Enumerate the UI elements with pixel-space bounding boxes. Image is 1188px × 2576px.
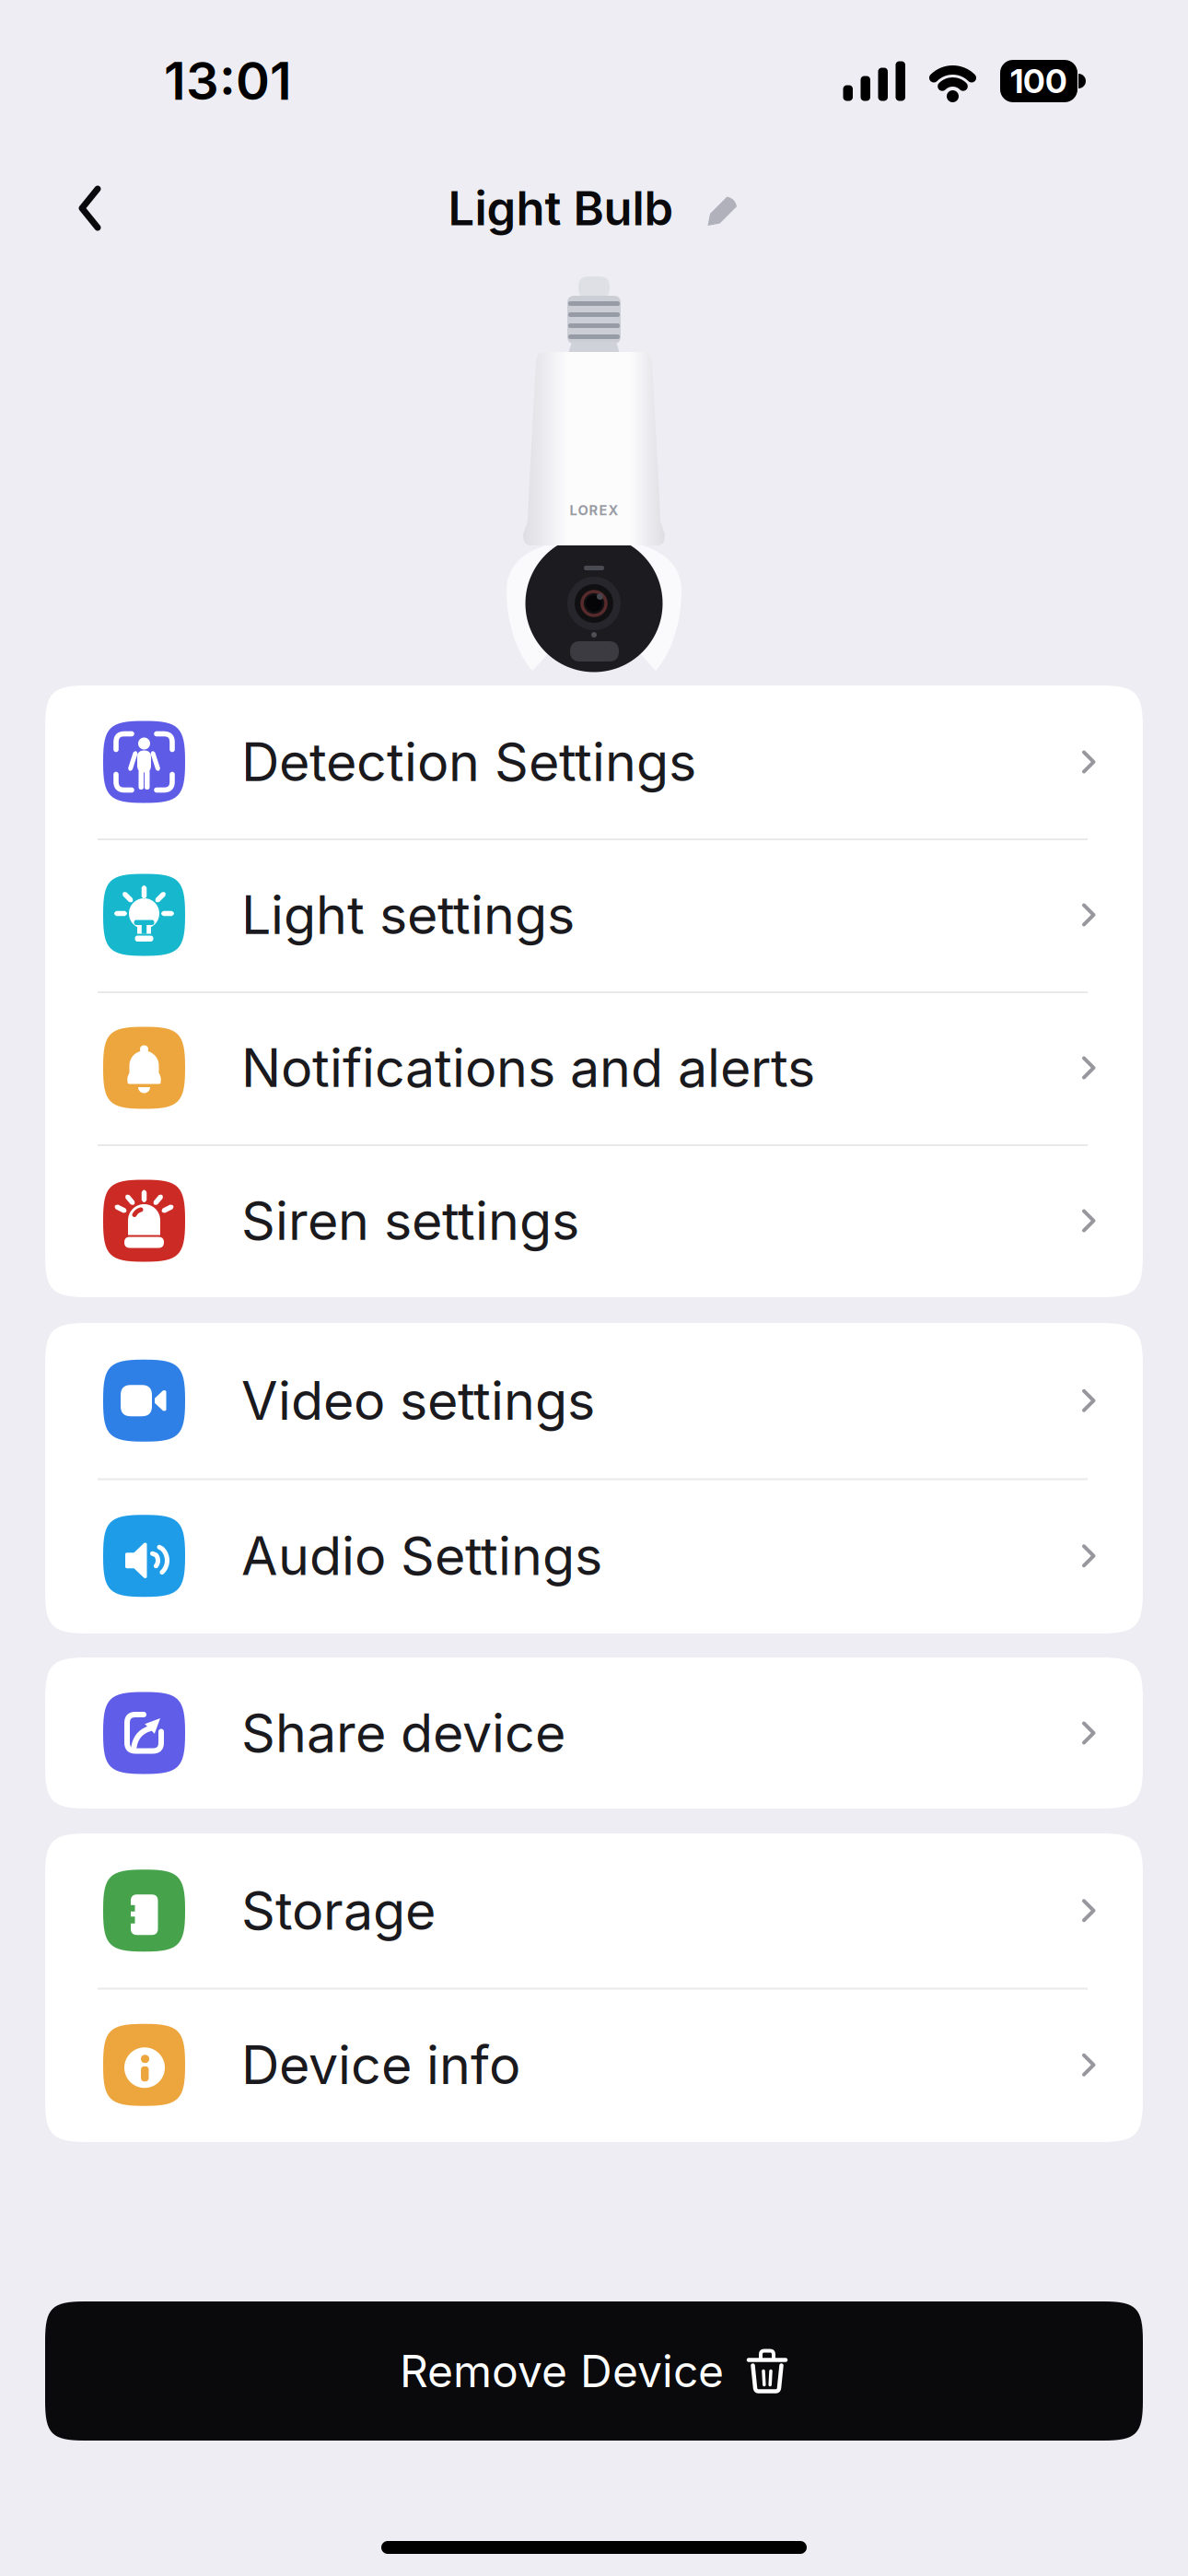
button[interactable]: Siren settings — [45, 1144, 1143, 1297]
staticText: 100 — [1010, 61, 1067, 101]
button[interactable]: Light settings — [45, 838, 1143, 991]
staticText: Siren settings — [241, 1189, 579, 1253]
staticText: Light settings — [241, 883, 575, 947]
staticText: LOREX — [570, 502, 618, 518]
button[interactable]: Notifications and alerts — [45, 991, 1143, 1144]
staticText: Video settings — [241, 1369, 595, 1433]
staticText: Remove Device — [400, 2344, 724, 2398]
button[interactable]: Detection Settings — [45, 685, 1143, 838]
button[interactable]: Device info — [45, 1988, 1143, 2142]
staticText: Notifications and alerts — [241, 1036, 815, 1100]
button[interactable]: Share device — [45, 1657, 1143, 1809]
staticText: Audio Settings — [241, 1524, 602, 1588]
button[interactable]: Remove Device — [45, 2301, 1143, 2441]
button[interactable] — [0, 185, 101, 231]
button[interactable]: Video settings — [45, 1323, 1143, 1478]
staticText: Light Bulb — [448, 180, 674, 236]
button[interactable]: Storage — [45, 1833, 1143, 1988]
staticText: Device info — [241, 2033, 520, 2097]
staticText: Share device — [241, 1701, 565, 1765]
staticText: 13:01 — [164, 50, 292, 112]
button[interactable]: Audio Settings — [45, 1478, 1143, 1633]
staticText: Storage — [241, 1879, 436, 1943]
staticText: Detection Settings — [241, 730, 696, 794]
button[interactable] — [705, 188, 740, 228]
